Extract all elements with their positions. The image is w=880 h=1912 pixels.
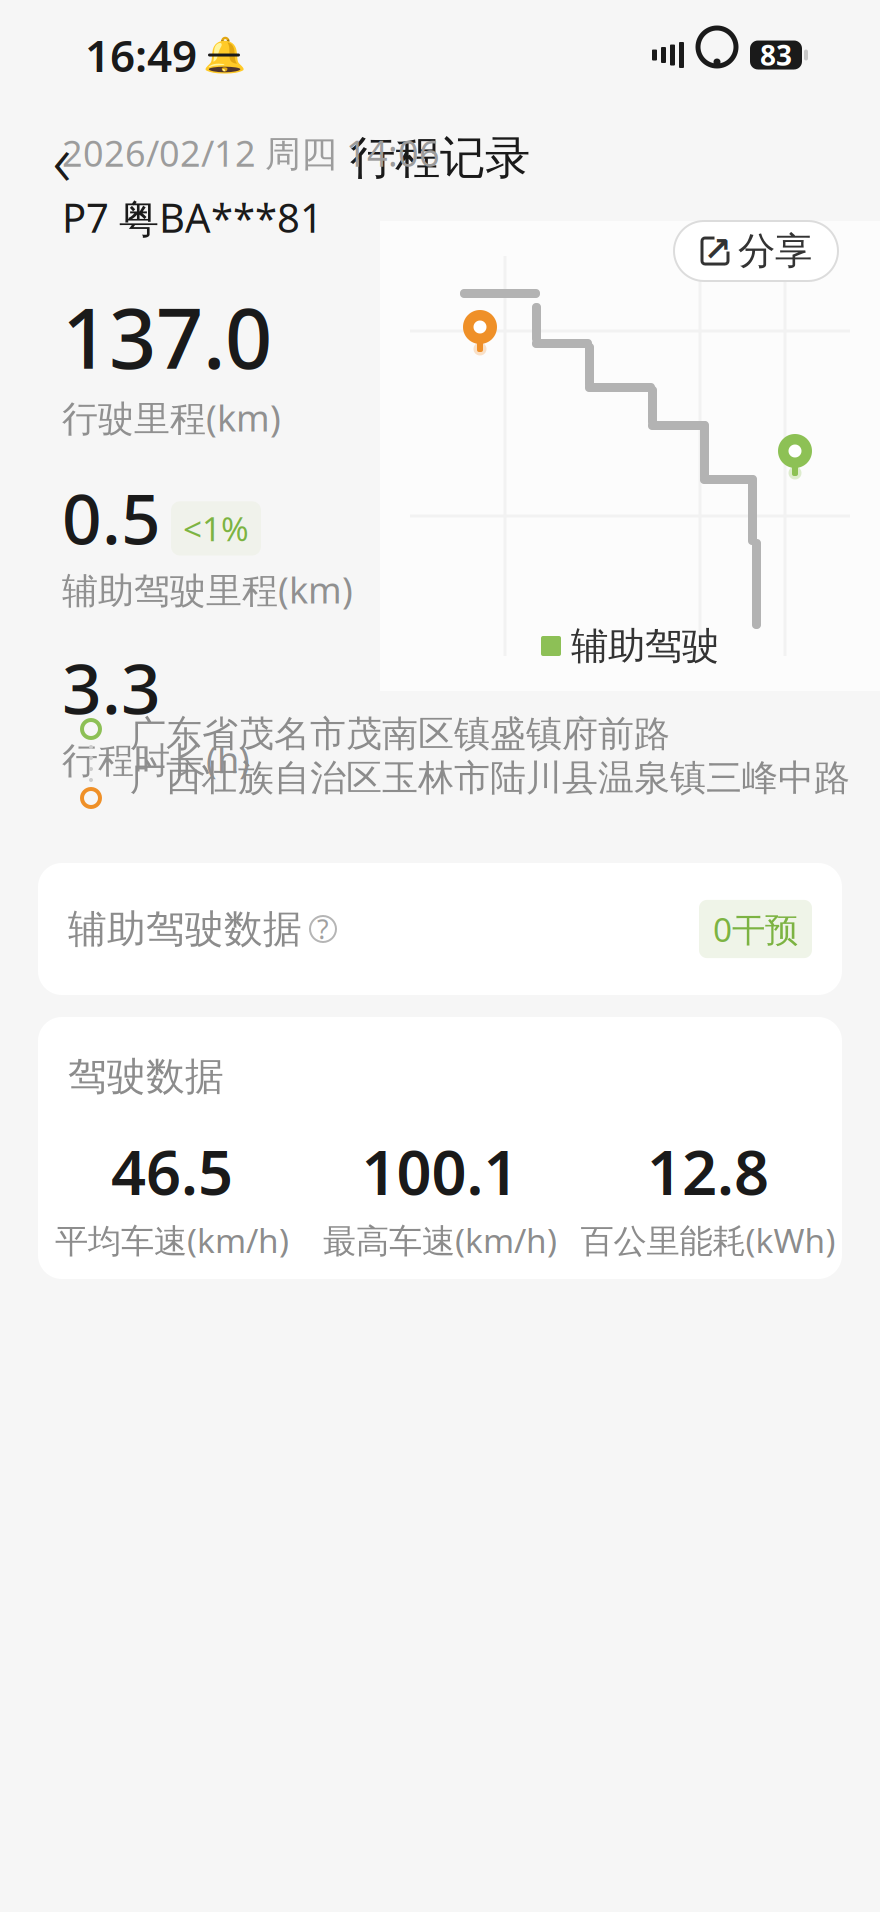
staticText: 驾驶数据 bbox=[68, 1053, 224, 1100]
staticText: 137.0 bbox=[62, 282, 272, 392]
staticText: 辅助驾驶数据 bbox=[68, 905, 302, 953]
staticText: 百公里能耗(kWh) bbox=[580, 1218, 835, 1262]
button[interactable]: ↗ bbox=[674, 221, 838, 281]
staticText: ‹ bbox=[52, 110, 71, 206]
staticText: ↗ bbox=[703, 230, 731, 268]
staticText: 2026/02/12 周四 14:06 bbox=[62, 129, 440, 177]
staticText: ? bbox=[317, 911, 329, 947]
staticText: 辅助驾驶 bbox=[571, 623, 719, 669]
staticText: 3.3 bbox=[62, 641, 161, 733]
staticText: 辅助驾驶里程(km) bbox=[62, 566, 353, 613]
staticText: 行程记录 bbox=[350, 130, 530, 186]
staticText: 行程时长(h) bbox=[62, 735, 250, 783]
staticText: 广西壮族自治区玉林市陆川县温泉镇三峰中路 bbox=[130, 756, 850, 800]
staticText: <1% bbox=[183, 506, 249, 551]
button[interactable]: 返回 bbox=[22, 118, 102, 198]
staticText: 83 bbox=[760, 36, 792, 74]
staticText: P7 粤BA***81 bbox=[62, 191, 323, 244]
staticText: 100.1 bbox=[361, 1130, 518, 1212]
staticText: 最高车速(km/h) bbox=[323, 1218, 557, 1262]
staticText: 12.8 bbox=[647, 1130, 769, 1212]
staticText: 46.5 bbox=[111, 1130, 233, 1212]
staticText: 0.5 bbox=[62, 471, 161, 564]
staticText: 0干预 bbox=[713, 907, 798, 951]
staticText: 平均车速(km/h) bbox=[55, 1218, 289, 1262]
staticText: 广东省茂名市茂南区镇盛镇府前路 bbox=[130, 712, 670, 756]
staticText: 行驶里程(km) bbox=[62, 394, 281, 441]
button[interactable]: 辅助驾驶数据 bbox=[38, 863, 842, 995]
staticText: 🔔 bbox=[202, 35, 245, 75]
staticText: 16:49 bbox=[85, 26, 197, 84]
staticText: 分享 bbox=[738, 228, 812, 274]
